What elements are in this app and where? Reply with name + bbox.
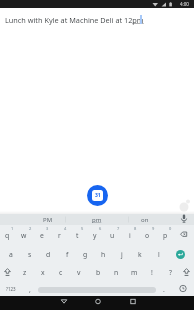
- button[interactable]: [176, 250, 185, 259]
- button[interactable]: o: [139, 228, 155, 242]
- button[interactable]: t: [69, 228, 85, 242]
- staticText: n: [114, 268, 119, 277]
- staticText: e: [40, 231, 44, 240]
- staticText: c: [59, 268, 63, 277]
- button[interactable]: [58, 296, 70, 307]
- button[interactable]: ?: [162, 265, 178, 279]
- staticText: 5: [81, 226, 84, 231]
- staticText: 9: [152, 226, 155, 231]
- staticText: v: [77, 268, 81, 277]
- button[interactable]: e: [34, 228, 50, 242]
- button[interactable]: q: [0, 228, 15, 242]
- button[interactable]: g: [77, 247, 93, 261]
- staticText: u: [110, 231, 115, 240]
- staticText: ,: [29, 285, 31, 294]
- button[interactable]: [2, 266, 13, 278]
- button[interactable]: w: [16, 228, 32, 242]
- staticText: 6: [99, 226, 102, 231]
- staticText: x: [41, 268, 45, 277]
- staticText: pm: [92, 216, 102, 224]
- button[interactable]: .: [156, 282, 172, 296]
- staticText: j: [121, 250, 123, 259]
- staticText: 7: [117, 226, 120, 231]
- button[interactable]: p: [157, 228, 173, 242]
- button[interactable]: pm: [82, 214, 112, 225]
- button[interactable]: [92, 296, 104, 307]
- staticText: ?: [169, 268, 172, 277]
- button[interactable]: l: [151, 247, 167, 261]
- staticText: w: [21, 231, 27, 240]
- staticText: g: [83, 250, 88, 259]
- button[interactable]: on: [130, 214, 160, 225]
- staticText: on: [141, 216, 149, 224]
- staticText: 3: [46, 226, 49, 231]
- staticText: h: [101, 250, 106, 259]
- staticText: k: [138, 250, 142, 259]
- button[interactable]: s: [22, 247, 38, 261]
- button[interactable]: !: [144, 265, 160, 279]
- button[interactable]: h: [95, 247, 111, 261]
- button[interactable]: v: [71, 265, 87, 279]
- staticText: ?123: [6, 286, 16, 292]
- staticText: q: [5, 231, 10, 240]
- button[interactable]: [177, 229, 189, 240]
- button[interactable]: b: [90, 265, 106, 279]
- staticText: p: [163, 231, 168, 240]
- staticText: 8: [134, 226, 137, 231]
- staticText: m: [131, 268, 138, 277]
- staticText: l: [158, 250, 160, 259]
- staticText: r: [58, 231, 61, 240]
- staticText: i: [129, 231, 131, 240]
- button[interactable]: ,: [22, 282, 38, 296]
- button[interactable]: f: [59, 247, 75, 261]
- staticText: o: [145, 231, 150, 240]
- button[interactable]: x: [35, 265, 51, 279]
- staticText: f: [66, 250, 69, 259]
- button[interactable]: z: [17, 265, 33, 279]
- button[interactable]: Lunch with Kyle at Machine Deli at 12pm: [5, 14, 165, 26]
- staticText: 4:00: [180, 1, 189, 7]
- staticText: s: [28, 250, 32, 259]
- button[interactable]: k: [132, 247, 148, 261]
- button[interactable]: u: [104, 228, 120, 242]
- staticText: !: [151, 268, 153, 277]
- staticText: 31: [95, 192, 101, 199]
- staticText: a: [9, 250, 13, 259]
- staticText: PM: [43, 216, 53, 224]
- staticText: .: [163, 285, 165, 294]
- button[interactable]: [178, 283, 188, 294]
- staticText: 4: [64, 226, 67, 231]
- staticText: t: [76, 231, 79, 240]
- staticText: Lunch with Kyle at Machine Deli at 12pm: [5, 15, 144, 25]
- button[interactable]: [181, 266, 192, 278]
- button[interactable]: n: [108, 265, 124, 279]
- staticText: y: [93, 231, 97, 240]
- button[interactable]: r: [51, 228, 67, 242]
- button[interactable]: m: [126, 265, 142, 279]
- staticText: b: [96, 268, 101, 277]
- staticText: d: [46, 250, 51, 259]
- staticText: 1: [11, 226, 14, 231]
- button[interactable]: ?123: [1, 282, 21, 296]
- button[interactable]: [127, 296, 139, 307]
- button[interactable]: [179, 213, 189, 226]
- button[interactable]: 31: [87, 185, 108, 206]
- button[interactable]: PM: [33, 214, 63, 225]
- button[interactable]: i: [122, 228, 138, 242]
- staticText: 2: [29, 226, 32, 231]
- button[interactable]: d: [40, 247, 56, 261]
- button[interactable]: c: [53, 265, 69, 279]
- button[interactable]: j: [114, 247, 130, 261]
- button[interactable]: a: [3, 247, 19, 261]
- button[interactable]: y: [87, 228, 103, 242]
- staticText: 0: [169, 226, 172, 231]
- staticText: z: [23, 268, 27, 277]
